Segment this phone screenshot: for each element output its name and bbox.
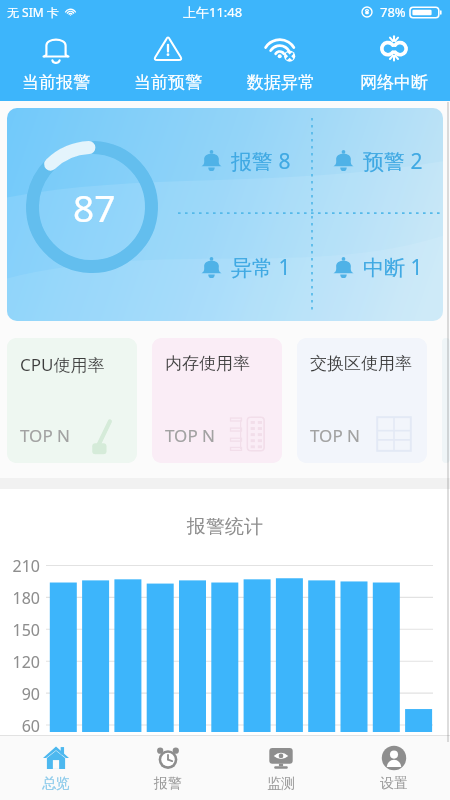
staticText: CPU使用率 — [20, 353, 105, 376]
button[interactable]: 内存使用率 — [152, 338, 282, 463]
button[interactable]: 数据异常 — [224, 24, 337, 101]
staticText: 异常 1 — [231, 253, 291, 282]
button[interactable]: 87 — [7, 108, 443, 321]
staticText: 当前报警 — [22, 72, 90, 93]
staticText: 120 — [6, 651, 40, 673]
staticText: 交换区使用率 — [310, 353, 412, 374]
staticText: 无 SIM 卡 — [7, 4, 59, 20]
button[interactable]: 网络中断 — [337, 24, 450, 101]
staticText: TOP N — [165, 424, 216, 447]
staticText: 中断 1 — [363, 253, 423, 282]
button[interactable]: 监测 — [224, 736, 337, 800]
staticText: 报警 — [154, 775, 182, 793]
staticText: 90 — [6, 683, 40, 705]
staticText: 180 — [6, 587, 40, 609]
staticText: 数据异常 — [247, 72, 315, 93]
staticText: 内存使用率 — [165, 353, 250, 374]
staticText: 设置 — [380, 775, 408, 793]
staticText: 上午11:48 — [183, 3, 243, 21]
staticText: 网络中断 — [360, 72, 428, 93]
button[interactable]: 磁盘使用率 — [442, 338, 450, 463]
staticText: TOP N — [310, 424, 361, 447]
staticText: 总览 — [42, 775, 70, 793]
button[interactable]: 预警 2 — [312, 108, 443, 214]
staticText: 报警 8 — [231, 147, 291, 176]
staticText: 78% — [380, 3, 406, 21]
staticText: 监测 — [267, 775, 295, 793]
button[interactable]: CPU使用率 — [7, 338, 137, 463]
button[interactable]: 当前报警 — [0, 24, 112, 101]
button[interactable]: 中断 1 — [312, 214, 443, 321]
button[interactable]: 当前预警 — [112, 24, 224, 101]
staticText: 预警 2 — [363, 147, 423, 176]
button[interactable]: 异常 1 — [178, 214, 312, 321]
staticText: 当前预警 — [134, 72, 202, 93]
button[interactable]: 设置 — [337, 736, 450, 800]
staticText: 报警统计 — [187, 515, 263, 539]
button[interactable]: 总览 — [0, 736, 112, 800]
staticText: 60 — [6, 715, 40, 737]
staticText: 87 — [73, 182, 116, 232]
staticText: 150 — [6, 619, 40, 641]
button[interactable]: 报警 8 — [178, 108, 312, 214]
button[interactable]: 报警 — [112, 736, 224, 800]
staticText: TOP N — [20, 424, 71, 447]
button[interactable]: 交换区使用率 — [297, 338, 427, 463]
staticText: 210 — [6, 555, 40, 577]
